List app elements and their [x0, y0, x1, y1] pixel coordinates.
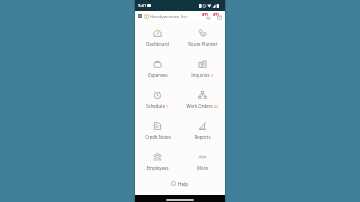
staticText: Reports: [194, 134, 211, 140]
button[interactable]: Employees: [135, 146, 180, 177]
staticText: Handywoman Inc: [150, 14, 188, 20]
staticText: Expenses: [148, 72, 168, 78]
staticText: Inquiries: [191, 72, 210, 78]
button[interactable]: Schedule: [135, 84, 180, 115]
button[interactable]: Expenses: [135, 53, 180, 84]
button[interactable]: Open navigation menu: [137, 11, 143, 22]
button[interactable]: Work Orders: [180, 84, 225, 115]
staticText: 9:41: [138, 3, 147, 9]
staticText: Credit Notes: [145, 134, 171, 140]
button[interactable]: Help: [135, 177, 225, 190]
button[interactable]: Route Planner: [180, 22, 225, 53]
button[interactable]: Notifications: [201, 11, 212, 22]
staticText: 42: [214, 104, 219, 109]
staticText: Employees: [146, 165, 169, 171]
staticText: Work Orders: [186, 103, 213, 109]
staticText: 1: [166, 104, 169, 109]
button[interactable]: Messages: [212, 11, 223, 22]
staticText: Help: [178, 181, 189, 187]
button[interactable]: Inquiries: [180, 53, 225, 84]
staticText: Dashboard: [146, 41, 169, 47]
button[interactable]: Dashboard: [135, 22, 180, 53]
staticText: 3: [211, 73, 214, 78]
button[interactable]: Credit Notes: [135, 115, 180, 146]
staticText: Schedule: [146, 103, 165, 109]
staticText: Route Planner: [188, 41, 218, 47]
button[interactable]: Reports: [180, 115, 225, 146]
button[interactable]: More: [180, 146, 225, 177]
staticText: More: [197, 165, 208, 171]
